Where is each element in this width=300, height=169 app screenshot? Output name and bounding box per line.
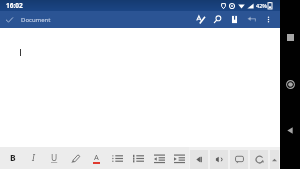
button[interactable]: Decrease indent: [149, 147, 170, 169]
button[interactable]: Increase indent: [170, 147, 189, 169]
button[interactable]: Highlight: [65, 147, 86, 169]
staticText: B: [10, 152, 16, 164]
button[interactable]: Numbered list: [128, 147, 149, 169]
button[interactable]: Bulleted list: [107, 147, 128, 169]
button[interactable]: Done: [0, 11, 18, 28]
button[interactable]: Italic: [23, 147, 44, 169]
staticText: 42%: [256, 2, 267, 9]
button[interactable]: Underline: [44, 147, 65, 169]
button[interactable]: Messages: [230, 150, 248, 169]
button[interactable]: Save: [226, 11, 243, 28]
staticText: Document: [21, 16, 51, 24]
button[interactable]: Bold: [2, 147, 23, 169]
staticText: 16:02: [6, 1, 23, 10]
button[interactable]: Expand: [270, 150, 279, 169]
button[interactable]: Back: [190, 150, 208, 169]
staticText: I: [32, 152, 35, 164]
button[interactable]: Search: [209, 11, 226, 28]
button[interactable]: Refresh: [250, 150, 268, 169]
staticText: A: [94, 152, 99, 162]
button[interactable]: Recent apps: [280, 27, 300, 47]
button[interactable]: Text colour: [86, 147, 107, 169]
button[interactable]: More options: [260, 11, 277, 28]
button[interactable]: Spell check: [192, 11, 209, 28]
button[interactable]: Mute: [210, 150, 228, 169]
button[interactable]: Undo: [243, 11, 260, 28]
button[interactable]: Home: [280, 74, 300, 94]
button[interactable]: Back: [280, 120, 300, 140]
staticText: U: [51, 152, 58, 164]
